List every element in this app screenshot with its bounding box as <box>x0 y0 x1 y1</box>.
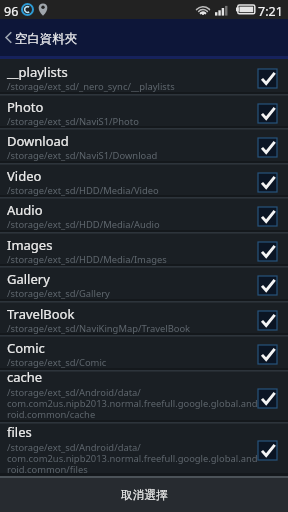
button[interactable]: Audio <box>0 197 288 232</box>
staticText: /storage/ext_sd/NaviKingMap/TravelBook <box>7 322 191 335</box>
other: Back <box>5 31 12 44</box>
button[interactable]: Selected <box>258 207 277 226</box>
button[interactable]: Selected <box>258 276 277 295</box>
button[interactable]: Selected <box>258 441 277 460</box>
staticText: roid.common/cache <box>7 408 96 421</box>
button[interactable]: cache <box>0 370 288 422</box>
staticText: 7:21 <box>258 3 283 20</box>
button[interactable]: 取消選擇 <box>0 478 288 512</box>
staticText: /storage/ext_sd/NaviS1/Photo <box>7 115 139 128</box>
staticText: Photo <box>7 98 44 116</box>
staticText: roid.common/files <box>7 463 88 476</box>
staticText: /storage/ext_sd/HDD/Media/Images <box>7 253 167 266</box>
button[interactable]: Download <box>0 128 288 163</box>
button[interactable]: Selected <box>258 173 277 192</box>
button[interactable]: Back <box>0 19 288 56</box>
button[interactable]: files <box>0 422 288 475</box>
button[interactable]: Selected <box>258 345 277 364</box>
button[interactable]: Photo <box>0 94 288 128</box>
staticText: __playlists <box>7 63 68 81</box>
staticText: /storage/ext_sd/HDD/Media/Audio <box>7 218 160 231</box>
button[interactable]: Images <box>0 232 288 266</box>
button[interactable]: Selected <box>258 311 277 330</box>
staticText: cache <box>7 368 43 386</box>
staticText: Audio <box>7 201 43 219</box>
button[interactable]: Selected <box>258 69 277 88</box>
staticText: /storage/ext_sd/Gallery <box>7 287 110 300</box>
staticText: TravelBook <box>7 305 75 323</box>
button[interactable]: TravelBook <box>0 301 288 335</box>
button[interactable]: Selected <box>258 242 277 261</box>
staticText: com.com2us.nipb2013.normal.freefull.goog… <box>7 397 258 410</box>
button[interactable]: Selected <box>258 389 277 408</box>
staticText: Video <box>7 167 42 185</box>
button[interactable]: Selected <box>258 104 277 123</box>
staticText: /storage/ext_sd/NaviS1/Download <box>7 149 158 162</box>
staticText: com.com2us.nipb2013.normal.freefull.goog… <box>7 452 258 465</box>
staticText: /storage/ext_sd/_nero_sync/__playlists <box>7 80 175 93</box>
staticText: /storage/ext_sd/Comic <box>7 356 107 369</box>
staticText: 空白資料夾 <box>15 31 77 47</box>
button[interactable]: __playlists <box>0 59 288 94</box>
button[interactable]: Video <box>0 163 288 197</box>
staticText: /storage/ext_sd/Android/data/ <box>7 386 141 399</box>
staticText: Comic <box>7 339 45 357</box>
staticText: 取消選擇 <box>121 488 168 503</box>
staticText: /storage/ext_sd/HDD/Media/Video <box>7 184 159 197</box>
staticText: 96 <box>4 3 19 20</box>
staticText: /storage/ext_sd/Android/data/ <box>7 441 141 454</box>
button[interactable]: Selected <box>258 138 277 157</box>
staticText: Download <box>7 132 69 150</box>
staticText: Gallery <box>7 270 50 288</box>
button[interactable]: Comic <box>0 335 288 370</box>
staticText: files <box>7 423 32 441</box>
staticText: Images <box>7 236 53 254</box>
button[interactable]: Gallery <box>0 266 288 301</box>
